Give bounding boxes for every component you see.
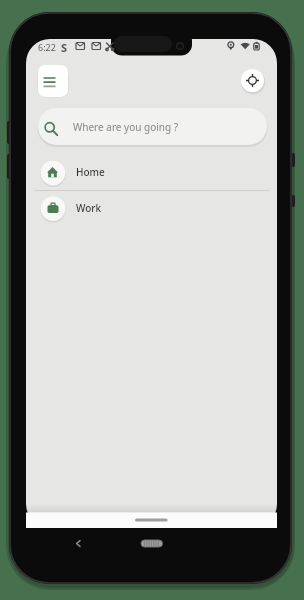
button[interactable] [38,65,68,97]
staticText: S [61,40,68,55]
staticText: Work [76,201,102,215]
button[interactable]: Home [27,157,277,189]
button[interactable]: Work [27,193,277,225]
staticText: Where are you going ? [73,120,179,134]
button[interactable] [241,69,264,92]
staticText: Home [76,165,105,179]
button[interactable]: Where are you going ? [38,108,267,145]
staticText: 6:22 [38,41,56,53]
